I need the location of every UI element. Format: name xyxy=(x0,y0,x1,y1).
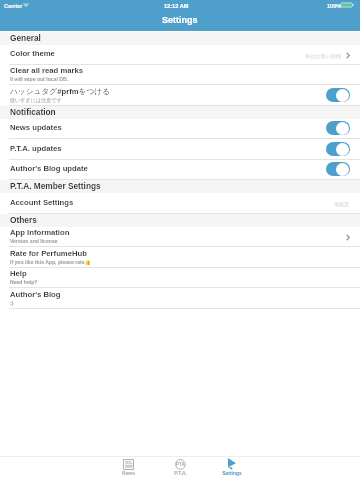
staticText: If you like this App, please rate👍 xyxy=(10,259,91,265)
staticText: PTA xyxy=(176,462,185,467)
button[interactable]: Clear all read marks xyxy=(0,65,360,85)
staticText: Others xyxy=(10,215,37,224)
button[interactable]: Author's Blog update xyxy=(0,160,360,180)
staticText: 100% xyxy=(327,3,342,9)
button[interactable]: P.T.A. updates xyxy=(0,140,360,160)
staticText: Author's Blog xyxy=(10,290,61,299)
button[interactable]: P.T.A. tab xyxy=(154,456,206,480)
staticText: P.T.A. xyxy=(174,471,187,476)
button[interactable]: App Information xyxy=(0,227,360,247)
staticText: General xyxy=(10,33,41,42)
staticText: 未設定 xyxy=(334,201,350,207)
staticText: News updates xyxy=(10,123,62,132)
staticText: 幸せの青い封筒 xyxy=(305,53,342,59)
staticText: :) xyxy=(10,300,14,306)
button[interactable]: Help xyxy=(0,268,360,288)
button[interactable]: Settings tab xyxy=(206,456,258,480)
staticText: ハッシュタグ#prfmをつける xyxy=(10,87,111,97)
button[interactable]: Toggle switch, on xyxy=(326,142,350,156)
button[interactable]: Toggle switch, on xyxy=(326,88,350,102)
staticText: App Information xyxy=(10,228,70,237)
button[interactable]: Color theme xyxy=(0,45,360,65)
staticText: Help xyxy=(10,269,27,278)
staticText: Version and license xyxy=(10,238,58,244)
staticText: P.T.A. updates xyxy=(10,144,62,153)
button[interactable]: News tab xyxy=(102,456,154,480)
button[interactable]: Account Settings xyxy=(0,194,360,214)
button[interactable]: Toggle switch, on xyxy=(326,162,350,176)
button[interactable]: Toggle switch, on xyxy=(326,121,350,135)
button[interactable]: News updates xyxy=(0,119,360,139)
staticText: Need help? xyxy=(10,279,38,285)
staticText: P.T.A. Member Settings xyxy=(10,181,101,190)
staticText: Notification xyxy=(10,107,56,116)
staticText: Author's Blog update xyxy=(10,164,88,173)
button[interactable]: ハッシュタグ#prfmをつける xyxy=(0,86,360,106)
staticText: Carrier xyxy=(4,3,23,9)
staticText: 使いすぎには注意です xyxy=(10,97,62,103)
staticText: News xyxy=(122,471,135,476)
staticText: Rate for PerfumeHub xyxy=(10,249,87,258)
staticText: Color theme xyxy=(10,49,55,58)
staticText: Clear all read marks xyxy=(10,66,84,75)
button[interactable]: Author's Blog xyxy=(0,289,360,309)
staticText: It will wipe out local DB. xyxy=(10,76,69,82)
staticText: 12:12 AM xyxy=(164,3,189,9)
button[interactable]: Rate for PerfumeHub xyxy=(0,248,360,268)
staticText: Settings xyxy=(162,15,198,25)
staticText: Settings xyxy=(222,471,242,476)
staticText: Account Settings xyxy=(10,198,74,207)
